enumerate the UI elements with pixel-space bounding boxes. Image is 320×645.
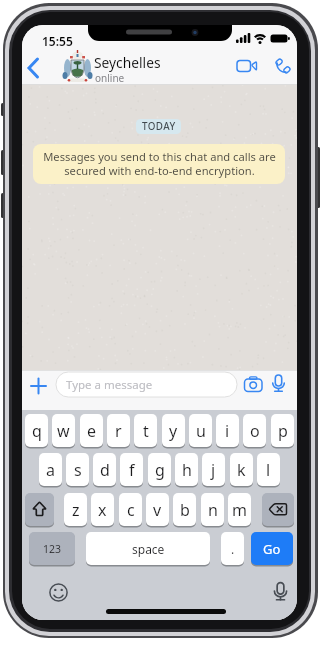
staticText: space xyxy=(132,541,165,557)
staticText: a xyxy=(46,459,55,481)
staticText: g xyxy=(155,459,165,481)
staticText: r xyxy=(115,420,122,442)
staticText: t xyxy=(143,420,149,442)
button[interactable]: o xyxy=(243,414,266,447)
button[interactable] xyxy=(28,373,49,405)
button[interactable]: h xyxy=(175,453,198,486)
staticText: o xyxy=(250,420,260,442)
button[interactable]: d xyxy=(93,453,116,486)
button[interactable] xyxy=(243,374,264,395)
button[interactable]: z xyxy=(64,493,87,526)
button[interactable]: a xyxy=(39,453,62,486)
button[interactable]: c xyxy=(119,493,142,526)
staticText: Type a message xyxy=(66,377,153,393)
button[interactable] xyxy=(273,56,293,76)
button[interactable]: k xyxy=(230,453,253,486)
button[interactable]: u xyxy=(189,414,212,447)
button[interactable]: g xyxy=(148,453,171,486)
button[interactable]: l xyxy=(257,453,280,486)
button[interactable] xyxy=(24,57,42,79)
button[interactable]: f xyxy=(120,453,143,486)
staticText: f xyxy=(129,459,135,481)
staticText: i xyxy=(225,420,230,442)
button[interactable]: r xyxy=(107,414,130,447)
staticText: s xyxy=(74,459,82,481)
staticText: p xyxy=(278,420,288,442)
button[interactable]: Type a message xyxy=(56,372,237,397)
button[interactable]: space xyxy=(86,532,210,565)
staticText: TODAY xyxy=(142,120,176,133)
button[interactable] xyxy=(262,493,294,526)
button[interactable]: y xyxy=(162,414,185,447)
button[interactable]: p xyxy=(271,414,294,447)
staticText: e xyxy=(87,420,97,442)
staticText: w xyxy=(57,420,70,442)
staticText: 123 xyxy=(43,542,62,556)
staticText: l xyxy=(266,459,271,481)
button[interactable]: b xyxy=(173,493,196,526)
staticText: h xyxy=(182,459,192,481)
staticText: Go xyxy=(263,540,281,558)
button[interactable]: t xyxy=(134,414,157,447)
button[interactable]: i xyxy=(216,414,239,447)
staticText: k xyxy=(237,459,246,481)
button[interactable]: . xyxy=(221,532,244,565)
staticText: z xyxy=(72,499,80,521)
button[interactable]: q xyxy=(25,414,48,447)
staticText: v xyxy=(153,499,162,521)
button[interactable] xyxy=(270,373,287,397)
staticText: q xyxy=(32,420,42,442)
staticText: Seychelles xyxy=(94,53,161,72)
button[interactable] xyxy=(25,493,54,526)
button[interactable]: w xyxy=(52,414,75,447)
button[interactable]: j xyxy=(202,453,225,486)
button[interactable]: s xyxy=(66,453,89,486)
button[interactable]: n xyxy=(201,493,224,526)
staticText: y xyxy=(169,420,178,442)
button[interactable]: m xyxy=(228,493,251,526)
staticText: x xyxy=(98,499,107,521)
staticText: c xyxy=(127,499,135,521)
button[interactable]: v xyxy=(146,493,169,526)
staticText: . xyxy=(231,541,235,557)
button[interactable]: Go xyxy=(251,532,293,565)
staticText: 15:55 xyxy=(42,33,73,49)
button[interactable]: x xyxy=(91,493,114,526)
staticText: Messages you send to this chat and calls… xyxy=(43,149,276,179)
button[interactable] xyxy=(48,582,69,603)
staticText: b xyxy=(180,499,190,521)
staticText: j xyxy=(211,459,216,481)
button[interactable]: 123 xyxy=(29,532,75,565)
button[interactable] xyxy=(61,50,94,83)
staticText: n xyxy=(208,499,218,521)
button[interactable] xyxy=(236,57,259,75)
button[interactable]: e xyxy=(80,414,103,447)
button[interactable] xyxy=(270,581,291,604)
staticText: u xyxy=(196,420,206,442)
staticText: d xyxy=(100,459,110,481)
staticText: online xyxy=(95,71,125,85)
staticText: m xyxy=(232,499,247,521)
